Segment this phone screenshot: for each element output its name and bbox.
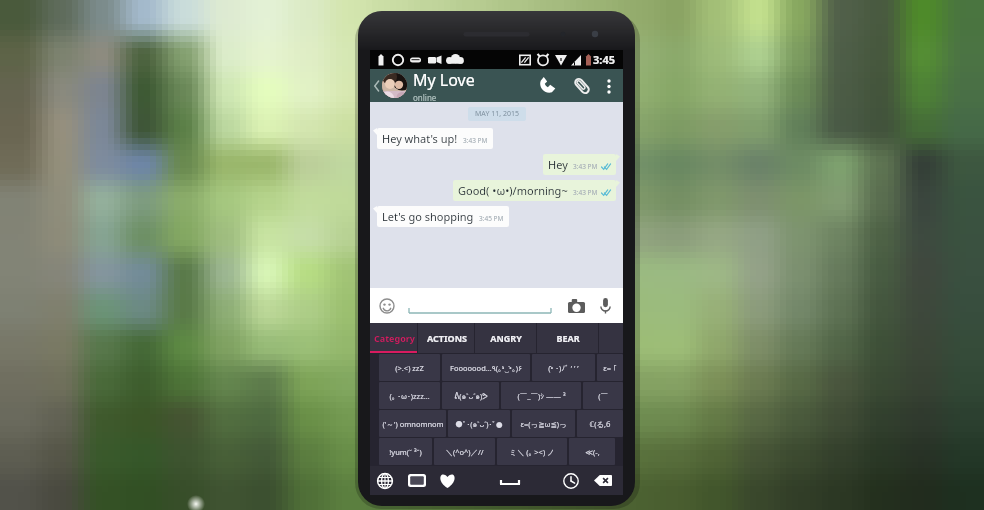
button[interactable]: ℂ(る,б (577, 410, 623, 437)
button[interactable]: More options (599, 76, 619, 96)
button[interactable]: ('～') omnomnom (379, 410, 446, 437)
staticText: Hey (548, 157, 568, 172)
staticText: ε= ｢ (603, 363, 617, 373)
staticText: ℂ(る,б (589, 419, 611, 429)
staticText: ≪(-, (585, 447, 600, 457)
button[interactable]: Recent (558, 466, 584, 495)
button[interactable]: ACTIONS (418, 323, 475, 353)
button[interactable]: BEAR (537, 323, 599, 353)
staticText: 3:43 PM (463, 136, 488, 145)
button[interactable]: Emoji (377, 296, 397, 316)
button[interactable]: ≪(-, (569, 438, 615, 465)
button[interactable]: (｡ ･ω･)zzz… (379, 382, 440, 409)
staticText: ●ﾟ･(๑˃ᴗ˂)･ﾟ● (455, 418, 503, 430)
staticText: 3:43 PM (573, 188, 598, 197)
button[interactable]: Favorites (434, 466, 460, 495)
button[interactable]: Let's go shopping (377, 206, 509, 227)
button[interactable]: Hey what's up! (377, 128, 493, 149)
button[interactable]: Back (370, 69, 623, 102)
button[interactable]: !yum(˘ ³˘) (379, 438, 432, 465)
button[interactable]: ●ﾟ･(๑˃ᴗ˂)･ﾟ● (448, 410, 510, 437)
button[interactable]: Hey (543, 154, 616, 175)
button[interactable]: Call (534, 72, 561, 99)
staticText: ('～') omnomnom (382, 419, 444, 429)
button[interactable]: Attach (568, 72, 595, 99)
button[interactable]: ANGRY (475, 323, 537, 353)
staticText: ANGRY (490, 332, 522, 344)
button[interactable]: (•̀ ･)ﾉﾞ ’ ’ ’ (532, 354, 595, 381)
button[interactable]: Camera (565, 295, 587, 317)
staticText: ミ＼ (｡ ><) ノ (509, 447, 555, 457)
button[interactable]: Category (370, 323, 418, 353)
staticText: ᕕ(๑˃ᴗ˂๑)ᕗ (454, 390, 488, 402)
button[interactable]: Space (497, 466, 523, 495)
staticText: ACTIONS (427, 332, 467, 344)
button[interactable] (407, 295, 557, 317)
button[interactable]: Voice message (594, 295, 616, 317)
button[interactable]: Backspace (590, 466, 616, 495)
staticText: MAY 11, 2015 (475, 109, 519, 119)
button[interactable]: ミ＼ (｡ ><) ノ (497, 438, 567, 465)
staticText: (￣_￣)ｼ —— ³ (517, 391, 566, 401)
button[interactable]: ε= ｢ (597, 354, 623, 381)
staticText: Fooooood…٩(｡•́‿•̀｡)۶ (450, 363, 522, 373)
staticText: (•̀ ･)ﾉﾞ ’ ’ ’ (548, 363, 579, 373)
button[interactable]: Keyboard (404, 466, 430, 495)
button[interactable]: (￣ (583, 382, 623, 409)
other: Back (373, 79, 380, 93)
staticText: 3:45 (593, 52, 615, 67)
button[interactable]: Fooooood…٩(｡•́‿•̀｡)۶ (442, 354, 530, 381)
staticText: 3:43 PM (573, 162, 598, 171)
staticText: BEAR (556, 332, 580, 344)
staticText: (>.<) zzZ (395, 363, 424, 373)
button[interactable]: (￣_￣)ｼ —— ³ (501, 382, 581, 409)
button[interactable]: Language (372, 466, 398, 495)
staticText: ＼(^o^)／// (445, 447, 484, 457)
button[interactable]: (>.<) zzZ (379, 354, 440, 381)
staticText: My Love (413, 69, 475, 91)
staticText: Good( •ω•)/morning~ (458, 183, 568, 198)
button[interactable]: Good( •ω•)/morning~ (453, 180, 616, 201)
staticText: (￣ (598, 391, 608, 401)
staticText: Hey what's up! (382, 131, 458, 146)
button[interactable]: ᕕ(๑˃ᴗ˂๑)ᕗ (442, 382, 499, 409)
staticText: 3:45 PM (479, 214, 504, 223)
staticText: online (413, 92, 437, 102)
staticText: Category (374, 332, 415, 344)
staticText: ε=(っ≧ω≦)っ (520, 419, 567, 429)
staticText: (｡ ･ω･)zzz… (389, 391, 430, 401)
staticText: !yum(˘ ³˘) (389, 447, 422, 457)
button[interactable]: ε=(っ≧ω≦)っ (512, 410, 575, 437)
button[interactable]: ＼(^o^)／// (434, 438, 495, 465)
staticText: Let's go shopping (382, 209, 474, 224)
